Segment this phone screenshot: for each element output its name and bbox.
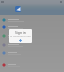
staticText: to continue to app [10,34,31,37]
button[interactable]: Loading [19,39,22,42]
button[interactable] [0,49,64,57]
button[interactable] [0,61,64,69]
button[interactable] [0,16,64,24]
staticText: Sign in [15,30,26,35]
button[interactable] [0,23,64,31]
button[interactable] [0,32,64,40]
button[interactable] [0,41,64,49]
button[interactable]: App logo [15,6,21,12]
